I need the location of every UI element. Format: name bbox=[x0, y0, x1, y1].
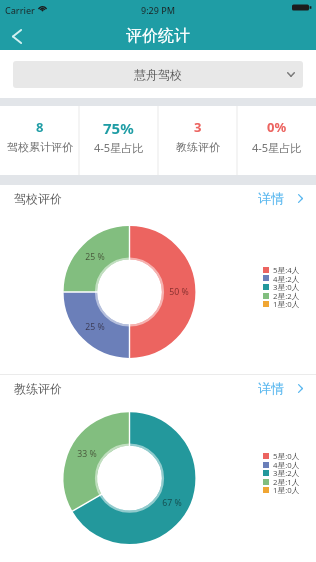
staticText: 评价统计 bbox=[126, 26, 190, 46]
button[interactable]: 75% bbox=[79, 106, 158, 175]
button[interactable]: 详情 bbox=[258, 380, 303, 396]
staticText: 3 bbox=[194, 118, 202, 136]
staticText: 0% bbox=[267, 118, 287, 136]
staticText: 1星:0人 bbox=[273, 485, 300, 496]
staticText: 75% bbox=[103, 118, 134, 138]
button[interactable]: 0% bbox=[237, 106, 316, 175]
staticText: 25 % bbox=[85, 251, 105, 263]
staticText: 5星:4人 bbox=[273, 265, 300, 276]
staticText: 50 % bbox=[169, 286, 189, 298]
staticText: 2星:1人 bbox=[273, 477, 300, 488]
staticText: Carrier bbox=[5, 4, 35, 16]
staticText: 详情 bbox=[258, 380, 284, 396]
staticText: 慧舟驾校 bbox=[134, 67, 182, 82]
button[interactable]: 8 bbox=[0, 106, 79, 175]
staticText: 驾校评价 bbox=[14, 191, 62, 206]
button[interactable]: 慧舟驾校 bbox=[13, 61, 303, 88]
staticText: 3星:0人 bbox=[273, 282, 300, 293]
staticText: 3星:2人 bbox=[273, 468, 300, 479]
staticText: 详情 bbox=[258, 190, 284, 206]
staticText: 8 bbox=[36, 118, 44, 136]
staticText: 4星:2人 bbox=[273, 274, 300, 285]
staticText: 驾校累计评价 bbox=[7, 140, 73, 154]
button[interactable]: 详情 bbox=[258, 190, 303, 206]
staticText: 67 % bbox=[162, 497, 182, 509]
button[interactable]: Back bbox=[0, 20, 36, 50]
staticText: 4-5星占比 bbox=[252, 140, 302, 155]
staticText: 教练评价 bbox=[14, 381, 62, 396]
staticText: 5星:0人 bbox=[273, 451, 300, 462]
staticText: 教练评价 bbox=[176, 140, 220, 154]
staticText: 4-5星占比 bbox=[94, 140, 144, 155]
staticText: 4星:0人 bbox=[273, 460, 300, 471]
staticText: 9:29 PM bbox=[141, 4, 175, 16]
staticText: 2星:2人 bbox=[273, 291, 300, 302]
staticText: 25 % bbox=[85, 321, 105, 333]
button[interactable]: 3 bbox=[158, 106, 237, 175]
staticText: 33 % bbox=[77, 448, 97, 460]
staticText: 1星:0人 bbox=[273, 299, 300, 310]
